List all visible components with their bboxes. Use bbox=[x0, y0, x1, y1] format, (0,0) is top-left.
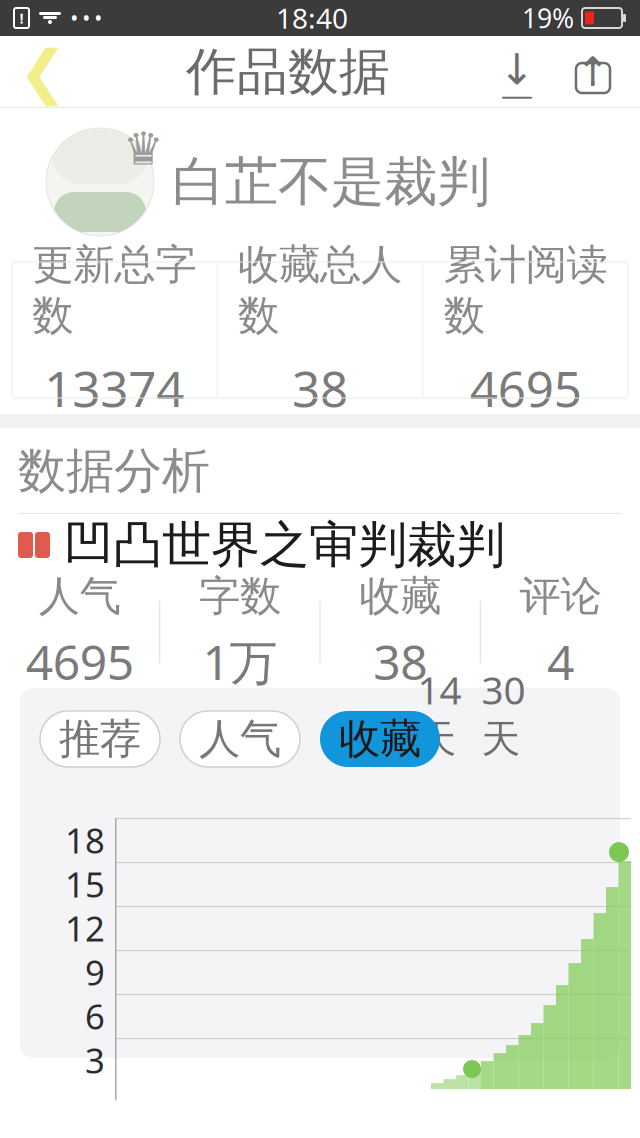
staticText bbox=[590, 59, 596, 89]
staticText: ❮ bbox=[18, 39, 67, 105]
staticText: 1万 bbox=[202, 629, 277, 693]
staticText: 14天 bbox=[417, 664, 461, 763]
staticText: ! bbox=[19, 8, 23, 28]
staticText: 4695 bbox=[26, 629, 134, 693]
button[interactable]: ♛ bbox=[0, 108, 640, 256]
staticText: 推荐 bbox=[59, 714, 141, 764]
staticText: 累计阅读数 bbox=[444, 239, 608, 341]
staticText: ↑ bbox=[576, 49, 610, 95]
button[interactable]: Share bbox=[566, 36, 620, 108]
staticText: 12 bbox=[65, 905, 105, 951]
staticText: 18:40 bbox=[276, 0, 348, 37]
staticText: 18 bbox=[65, 817, 105, 863]
button[interactable]: 人气 bbox=[180, 711, 300, 767]
staticText: • • • bbox=[71, 6, 102, 29]
staticText: 作品数据 bbox=[186, 41, 390, 103]
staticText: 9 bbox=[85, 949, 105, 995]
button[interactable]: 收藏 bbox=[320, 711, 440, 767]
staticText: 4 bbox=[547, 629, 574, 693]
staticText: 6 bbox=[85, 993, 105, 1039]
staticText: 3 bbox=[85, 1037, 105, 1083]
staticText: 15 bbox=[65, 861, 105, 907]
staticText: 30天 bbox=[481, 664, 525, 763]
button[interactable]: 推荐 bbox=[40, 711, 160, 767]
staticText: 人气 bbox=[39, 571, 121, 621]
staticText: 13374 bbox=[44, 355, 184, 420]
staticText: ↓ bbox=[499, 45, 535, 94]
staticText: 人气 bbox=[199, 714, 281, 764]
staticText: 38 bbox=[373, 629, 427, 693]
staticText: 数据分析 bbox=[18, 441, 210, 500]
staticText: 白芷不是裁判 bbox=[172, 149, 490, 215]
button[interactable]: Download bbox=[490, 36, 544, 108]
staticText: 凹凸世界之审判裁判 bbox=[64, 515, 505, 575]
staticText: 收藏总人数 bbox=[238, 239, 402, 341]
staticText: 19% bbox=[522, 0, 574, 36]
staticText: 收藏 bbox=[359, 571, 441, 621]
staticText: ♛ bbox=[123, 123, 164, 174]
staticText: 评论 bbox=[519, 571, 601, 621]
staticText: 4695 bbox=[470, 355, 582, 420]
button[interactable]: Back bbox=[0, 36, 86, 108]
staticText: ↑ bbox=[576, 49, 610, 95]
staticText: 字数 bbox=[199, 571, 281, 621]
staticText: 更新总字数 bbox=[32, 239, 196, 341]
staticText: 收藏 bbox=[339, 714, 421, 764]
staticText: 38 bbox=[292, 355, 348, 420]
